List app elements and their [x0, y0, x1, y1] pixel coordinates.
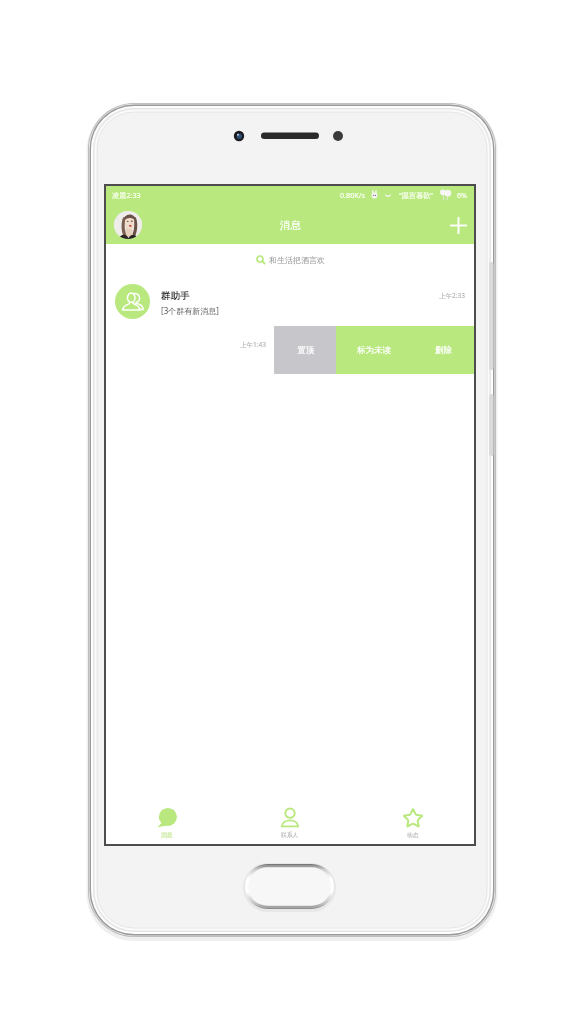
staticText: 标为未读 [357, 345, 391, 356]
staticText: 上午2:33 [439, 291, 465, 300]
button[interactable]: Add [444, 211, 472, 239]
staticText: 消息 [161, 831, 173, 838]
staticText: 消息 [280, 219, 301, 232]
button[interactable]: 标为未读 [336, 326, 412, 374]
button[interactable]: 消息 [106, 796, 228, 844]
staticText: 上午1:43 [240, 340, 266, 349]
button[interactable]: 删除 [412, 326, 474, 374]
staticText: 删除 [435, 345, 452, 356]
staticText: 0.80K/s [340, 190, 365, 200]
button[interactable]: Profile [114, 211, 142, 239]
button[interactable]: 群助手 [106, 276, 474, 326]
button[interactable]: 动态 [351, 796, 474, 844]
button[interactable]: 置顶 [274, 326, 336, 374]
staticText: 动态 [407, 831, 419, 838]
staticText: 置顶 [297, 345, 314, 356]
staticText: 联系人 [281, 831, 299, 838]
button[interactable]: 联系人 [228, 796, 351, 844]
staticText: 和生活把酒言欢 [269, 255, 325, 265]
staticText: 凌晨2:33 [112, 190, 141, 200]
staticText: 6% [457, 190, 468, 200]
button[interactable]: 和生活把酒言欢 [106, 244, 474, 276]
staticText: 群助手 [161, 290, 190, 302]
staticText: [3个群有新消息] [161, 305, 219, 316]
staticText: “温言暮欲” [399, 190, 433, 200]
